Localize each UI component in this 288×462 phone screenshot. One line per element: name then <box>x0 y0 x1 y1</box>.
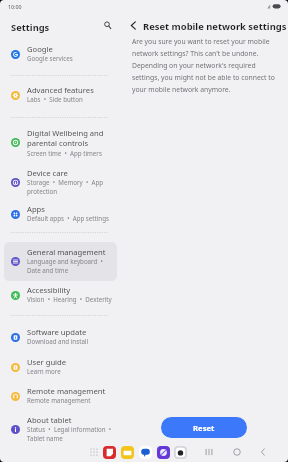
button[interactable]: Reset <box>161 417 247 438</box>
staticText: Apps <box>27 204 45 214</box>
staticText: Device care <box>27 168 68 178</box>
button[interactable]: Digital Wellbeing and parental controls <box>4 123 117 162</box>
staticText: Status • Legal information • Tablet name <box>27 425 115 443</box>
button[interactable]: About tablet <box>4 410 117 449</box>
button[interactable]: App 4 <box>174 446 187 459</box>
staticText: Vision • Hearing • Dexterity <box>27 295 112 303</box>
staticText: Digital Wellbeing and parental controls <box>27 128 115 149</box>
staticText: 10:00 <box>8 3 22 10</box>
staticText: Google services <box>27 54 73 62</box>
staticText: Language and keyboard • Date and time <box>27 257 115 275</box>
button[interactable]: Google <box>4 39 117 69</box>
button[interactable]: Home <box>231 446 243 458</box>
button[interactable]: Recents <box>203 446 215 458</box>
button[interactable]: Back <box>125 17 142 34</box>
staticText: Remote management <box>27 396 91 404</box>
button[interactable]: General management <box>4 242 117 281</box>
button[interactable]: App 1 <box>121 446 134 459</box>
button[interactable]: Back <box>257 446 269 458</box>
button[interactable]: Accessibility <box>4 280 117 310</box>
staticText: Reset mobile network settings <box>143 20 287 33</box>
button[interactable]: Apps <box>4 199 117 229</box>
staticText: Advanced features <box>27 85 94 95</box>
button[interactable]: Device care <box>4 163 117 202</box>
staticText: Labs • Side button <box>27 95 83 103</box>
staticText: Settings <box>11 21 50 34</box>
staticText: Are you sure you want to reset your mobi… <box>132 37 282 94</box>
staticText: Learn more <box>27 367 61 375</box>
button[interactable]: Remote management <box>4 381 117 411</box>
staticText: Accessibility <box>27 285 71 295</box>
button[interactable]: User guide <box>4 352 117 382</box>
button[interactable]: App 2 <box>139 446 152 459</box>
staticText: Screen time • App timers <box>27 149 102 157</box>
staticText: Storage • Memory • App protection <box>27 178 115 196</box>
staticText: Download and install <box>27 337 89 345</box>
staticText: User guide <box>27 357 67 367</box>
staticText: Google <box>27 44 53 54</box>
staticText: Default apps • App settings <box>27 214 109 222</box>
staticText: Reset <box>193 423 215 433</box>
button[interactable]: Search <box>99 16 115 32</box>
button[interactable]: App 0 <box>103 446 116 459</box>
staticText: Remote management <box>27 386 106 396</box>
button[interactable]: Advanced features <box>4 80 117 110</box>
staticText: Software update <box>27 327 87 337</box>
button[interactable]: All apps <box>89 447 99 457</box>
staticText: About tablet <box>27 415 72 425</box>
staticText: General management <box>27 247 106 257</box>
button[interactable]: App 3 <box>157 446 170 459</box>
button[interactable]: Software update <box>4 322 117 352</box>
